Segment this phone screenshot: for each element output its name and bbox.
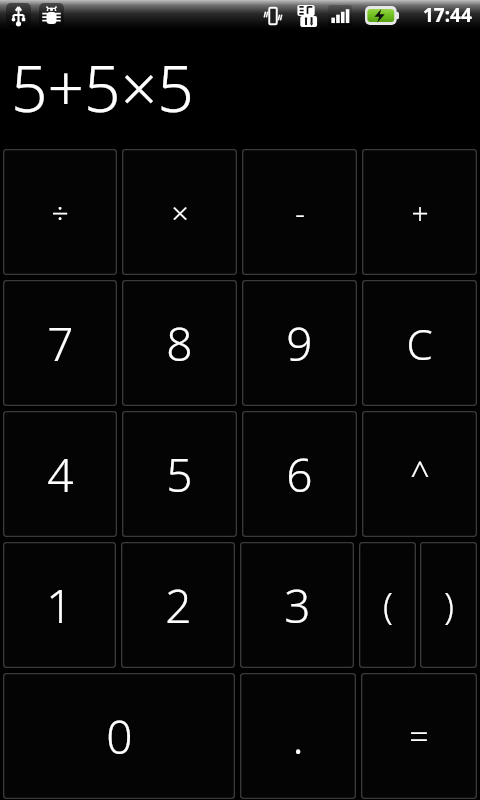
staticText: ×	[171, 192, 189, 233]
staticText: =	[409, 713, 429, 759]
button[interactable]: 7	[3, 280, 117, 406]
button[interactable]: 0	[3, 673, 235, 799]
staticText: 17:44	[423, 2, 472, 28]
button[interactable]: 3	[240, 542, 354, 668]
staticText: ^	[410, 451, 430, 497]
staticText: +	[411, 192, 429, 233]
button[interactable]: Multiply	[122, 149, 237, 275]
button[interactable]: 1	[3, 542, 116, 668]
staticText: ÷	[51, 192, 69, 233]
button[interactable]: 9	[242, 280, 357, 406]
staticText: 8	[166, 312, 193, 375]
staticText: 2	[165, 574, 192, 637]
button[interactable]: Plus	[362, 149, 477, 275]
button[interactable]: 8	[122, 280, 237, 406]
staticText: 7	[47, 312, 74, 375]
button[interactable]: Divide	[3, 149, 117, 275]
staticText: C	[406, 315, 433, 372]
staticText: 4	[47, 443, 74, 506]
button[interactable]: Power	[362, 411, 477, 537]
button[interactable]: Minus	[242, 149, 357, 275]
button[interactable]: Clear	[362, 280, 477, 406]
staticText: )	[444, 581, 454, 630]
button[interactable]: 2	[121, 542, 235, 668]
button[interactable]: 6	[242, 411, 357, 537]
staticText: .	[292, 705, 304, 768]
staticText: 6	[286, 443, 313, 506]
button[interactable]: 5	[122, 411, 237, 537]
staticText: 9	[286, 312, 313, 375]
staticText: (	[383, 581, 393, 630]
button[interactable]: Close parenthesis	[420, 542, 477, 668]
staticText: 5	[166, 443, 193, 506]
button[interactable]: Decimal point	[240, 673, 356, 799]
button[interactable]: Open parenthesis	[359, 542, 416, 668]
staticText: 1	[46, 574, 73, 637]
button[interactable]: Equals	[361, 673, 477, 799]
button[interactable]: 4	[3, 411, 117, 537]
staticText: 0	[106, 705, 133, 768]
staticText: 3	[284, 574, 311, 637]
staticText: 5+5×5	[11, 44, 194, 131]
staticText: -	[295, 192, 305, 233]
